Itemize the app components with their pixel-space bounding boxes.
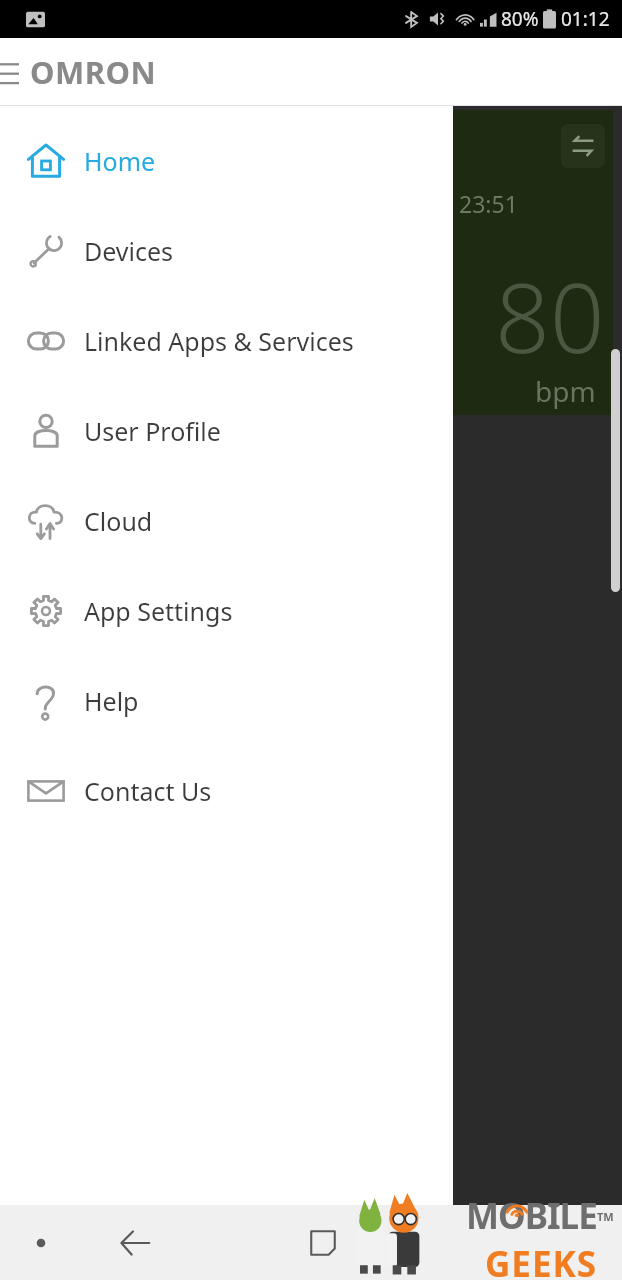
staticText: Linked Apps & Services [84,324,354,358]
staticText: User Profile [84,414,221,448]
button[interactable]: Menu [14,1216,68,1270]
staticText: bpm [535,372,596,410]
staticText: 80% [501,6,539,32]
button[interactable]: Recent apps [292,1212,354,1274]
staticText: GEEKS [485,1240,598,1278]
button[interactable]: Linked Apps & Services [0,296,453,386]
staticText: 23:51 [459,188,518,219]
button[interactable]: App Settings [0,566,453,656]
staticText: MOBILE [466,1192,597,1240]
staticText: Home [84,144,156,178]
staticText: App Settings [84,594,233,628]
staticText: 80 [495,250,605,381]
button[interactable]: Help [0,656,453,746]
staticText: 01:12 [561,6,610,32]
button[interactable]: Back [104,1212,166,1274]
button[interactable]: Cloud [0,476,453,566]
button[interactable]: Sync [561,124,605,168]
button[interactable]: Open navigation drawer [0,48,30,96]
button[interactable]: User Profile [0,386,453,476]
staticText: Contact Us [84,774,212,808]
button[interactable]: Contact Us [0,746,453,836]
staticText: Devices [84,234,174,268]
staticText: TM [597,1209,614,1224]
staticText: OMRON [30,51,157,93]
staticText: Help [84,684,139,718]
staticText: Cloud [84,504,153,538]
button[interactable]: Home [0,116,453,206]
button[interactable]: Devices [0,206,453,296]
